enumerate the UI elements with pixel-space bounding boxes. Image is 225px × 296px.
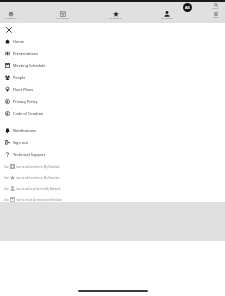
button[interactable]: Profile [183, 3, 192, 12]
staticText: Menu [213, 16, 219, 19]
staticText: Conference [5, 17, 17, 20]
staticText: Presentations [13, 51, 39, 56]
staticText: Privacy Policy [13, 99, 38, 104]
button[interactable]: Technical Support [0, 148, 225, 160]
button[interactable]: Meeting Schedule [0, 59, 225, 71]
button[interactable]: Presentations [0, 47, 225, 59]
staticText: Search [212, 7, 219, 10]
staticText: Notifications [13, 128, 37, 133]
button[interactable]: Sign out [0, 136, 225, 148]
staticText: My Schedule [56, 17, 70, 20]
staticText: icon to add a person to My Network [16, 187, 61, 191]
staticText: Use [4, 198, 9, 202]
button[interactable]: Home [0, 35, 225, 47]
staticText: Use [4, 165, 9, 169]
button[interactable]: My Favorites [100, 11, 132, 20]
staticText: icon to add an item to My Favorites [16, 176, 60, 180]
staticText: Floor Plans [13, 87, 34, 92]
button[interactable]: Conference [0, 11, 27, 20]
staticText: My Favorites [109, 17, 123, 20]
staticText: Use [4, 176, 9, 180]
button[interactable]: Code of Conduct [0, 107, 225, 119]
staticText: My Network [161, 17, 174, 20]
staticText: Use [4, 187, 9, 191]
staticText: AS [185, 5, 190, 10]
staticText: People [13, 75, 26, 80]
button[interactable]: My Network [151, 11, 183, 20]
staticText: Meeting Schedule [13, 63, 46, 68]
button[interactable]: Search [206, 3, 225, 10]
button[interactable]: My Schedule [47, 11, 79, 20]
staticText: Technical Support [13, 152, 46, 157]
button[interactable]: Floor Plans [0, 83, 225, 95]
button[interactable]: People [0, 71, 225, 83]
staticText: Code of Conduct [13, 111, 44, 116]
button[interactable]: Notifications [0, 124, 225, 136]
staticText: Sign out [13, 140, 28, 145]
button[interactable]: Close menu [4, 25, 13, 34]
button[interactable]: Privacy Policy [0, 95, 225, 107]
staticText: icon to add an item to My Schedule [16, 165, 60, 169]
staticText: icon to check & review your Schedule [16, 198, 62, 202]
staticText: Home [13, 39, 24, 44]
button[interactable]: Menu [206, 12, 225, 19]
